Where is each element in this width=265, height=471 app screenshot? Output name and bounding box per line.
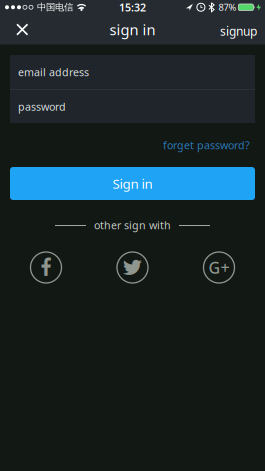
staticText: sign in — [109, 20, 155, 39]
staticText: other sign with — [94, 218, 171, 232]
staticText: forget password? — [163, 138, 250, 152]
button[interactable]: forget password? — [163, 138, 265, 152]
staticText:  — [122, 257, 142, 278]
staticText: 87% — [218, 1, 236, 13]
staticText:  — [40, 258, 51, 277]
staticText: 中国电信 — [37, 1, 73, 13]
button[interactable]: Sign in — [0, 167, 265, 200]
staticText: 15:32 — [119, 0, 146, 14]
staticText: G+ — [208, 257, 229, 278]
staticText: signup — [220, 23, 257, 39]
button[interactable]: Sign in with Twitter — [117, 252, 148, 283]
staticText: password — [18, 99, 66, 114]
button[interactable]: password — [10, 90, 255, 123]
staticText: email address — [18, 65, 89, 79]
button[interactable]: Close — [0, 24, 37, 35]
staticText: Sign in — [112, 175, 152, 192]
button[interactable]: Sign in with Facebook — [30, 252, 61, 283]
button[interactable]: email address — [10, 55, 255, 89]
button[interactable]: signup — [220, 20, 265, 39]
button[interactable]: Sign in with Google — [203, 252, 234, 283]
